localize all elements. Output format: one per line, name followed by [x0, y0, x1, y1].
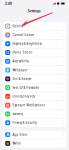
staticText: A [6, 132, 9, 138]
staticText: Display & Brightness [12, 42, 41, 46]
staticText: › [63, 102, 64, 108]
staticText: › [63, 120, 64, 126]
button[interactable]: Wallet [3, 139, 66, 148]
staticText: Settings [28, 9, 41, 13]
staticText: Battery [12, 112, 22, 116]
button[interactable]: Battery [3, 110, 66, 118]
staticText: › [63, 140, 64, 146]
button[interactable]: Wallpaper [3, 66, 66, 74]
staticText: Accessibility [12, 59, 28, 63]
staticText: › [63, 111, 64, 117]
button[interactable]: Siri & Search [3, 75, 66, 83]
staticText: Exposure Notifications [12, 103, 44, 107]
staticText: General [12, 24, 24, 28]
staticText: › [63, 93, 64, 99]
staticText: › [63, 41, 64, 47]
staticText: › [63, 132, 64, 137]
staticText: › [63, 23, 64, 29]
button[interactable]: A [3, 130, 66, 139]
button[interactable]: Display & Brightness [3, 40, 66, 48]
staticText: Control Centre [12, 33, 34, 37]
button[interactable]: Accessibility [3, 57, 66, 65]
button[interactable]: Exposure Notifications [3, 101, 66, 109]
staticText: Siri & Search [12, 77, 31, 81]
staticText: › [63, 85, 64, 90]
staticText: Face ID & Passcode [12, 86, 39, 89]
staticText: › [63, 67, 64, 73]
staticText: Wallpaper [12, 68, 27, 72]
staticText: › [63, 50, 64, 55]
button[interactable]: Home Screen [3, 48, 66, 57]
button[interactable]: Face ID & Passcode [3, 83, 66, 92]
button[interactable]: Control Centre [3, 31, 66, 39]
button[interactable]: Privacy & Security [3, 119, 66, 127]
staticText: Home Screen [12, 51, 32, 54]
staticText: 2:48 [5, 1, 12, 6]
button[interactable]: General [3, 22, 66, 30]
staticText: › [63, 76, 64, 82]
staticText: Wallet [12, 142, 21, 145]
button[interactable]: SOS [3, 92, 66, 101]
staticText: › [63, 58, 64, 64]
staticText: Emergency SOS [12, 95, 35, 98]
staticText: SOS [6, 95, 10, 98]
staticText: › [63, 32, 64, 38]
staticText: Privacy & Security [12, 121, 36, 125]
staticText: App Store [12, 133, 27, 136]
